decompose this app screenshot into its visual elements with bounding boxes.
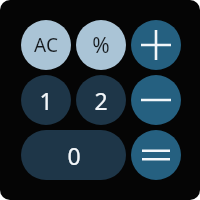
- button[interactable]: 2: [76, 75, 126, 125]
- button[interactable]: AC: [21, 20, 71, 70]
- button[interactable]: 0: [21, 130, 126, 180]
- button[interactable]: 1: [21, 75, 71, 125]
- button[interactable]: %: [76, 20, 126, 70]
- staticText: AC: [34, 32, 58, 58]
- button[interactable]: Equals: [131, 130, 181, 180]
- staticText: 1: [39, 85, 53, 116]
- button[interactable]: Plus: [131, 20, 181, 70]
- staticText: 2: [94, 85, 108, 116]
- button[interactable]: Minus: [131, 75, 181, 125]
- staticText: 0: [67, 140, 81, 171]
- staticText: %: [92, 31, 110, 60]
